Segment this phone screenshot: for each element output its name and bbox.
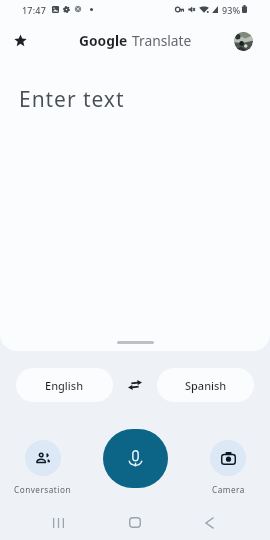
button[interactable]: Home <box>114 505 155 540</box>
staticText: English <box>45 378 84 393</box>
button[interactable]: Saved translations <box>8 28 32 52</box>
staticText: Conversation <box>14 484 71 495</box>
button[interactable]: Back <box>189 505 230 540</box>
button[interactable]: Camera <box>198 440 257 498</box>
staticText: 93% <box>222 4 241 16</box>
staticText: Spanish <box>185 378 227 393</box>
button[interactable]: Account <box>234 32 253 51</box>
staticText: Translate <box>132 31 192 50</box>
staticText: Enter text <box>19 85 125 114</box>
staticText: 17:47 <box>22 4 47 16</box>
button[interactable]: Spanish <box>157 368 254 402</box>
staticText: Camera <box>212 484 245 495</box>
button[interactable]: Recent apps <box>38 505 79 540</box>
staticText: Google <box>79 31 128 50</box>
button[interactable]: English <box>16 368 113 402</box>
button[interactable]: Speak <box>103 429 168 488</box>
button[interactable]: Conversation <box>13 440 72 498</box>
button[interactable]: Swap languages <box>122 372 148 398</box>
